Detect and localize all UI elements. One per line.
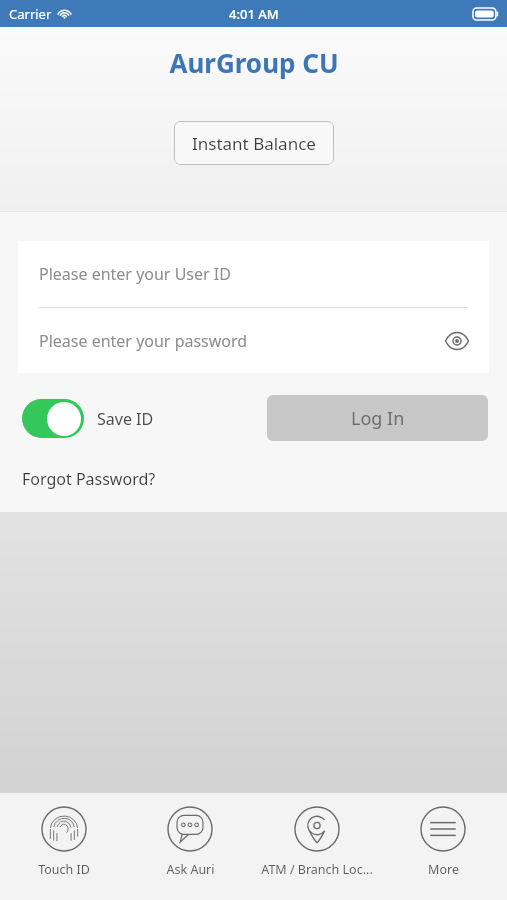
button[interactable]: More [381, 793, 505, 878]
staticText: More [428, 861, 459, 878]
button[interactable]: ATM / Branch Locator [255, 793, 379, 878]
button[interactable]: Please enter your User ID [18, 241, 489, 307]
button[interactable]: Show password [441, 325, 473, 357]
button[interactable]: Please enter your password [18, 308, 489, 373]
button[interactable]: Log In [267, 395, 488, 441]
button[interactable]: Forgot Password? [22, 468, 156, 490]
other: Ask Auri [167, 806, 213, 852]
staticText: Log In [351, 406, 405, 431]
staticText: Ask Auri [166, 861, 215, 878]
staticText: Touch ID [38, 861, 90, 878]
other: More [420, 806, 466, 852]
button[interactable]: Instant Balance [174, 121, 334, 165]
staticText: Forgot Password? [22, 468, 156, 490]
button[interactable]: Ask Auri [128, 793, 252, 878]
other: Touch ID [41, 806, 87, 852]
staticText: Instant Balance [192, 132, 316, 155]
button[interactable]: Save ID [22, 399, 154, 438]
staticText: 4:01 AM [229, 5, 279, 23]
staticText: Carrier [9, 5, 52, 23]
staticText: AurGroup CU [169, 45, 339, 80]
staticText: Please enter your password [39, 330, 248, 352]
staticText: Please enter your User ID [39, 263, 231, 285]
staticText: ATM / Branch Loc... [261, 861, 373, 878]
other: ATM / Branch Locator [294, 806, 340, 852]
staticText: Save ID [97, 408, 154, 430]
button[interactable]: Touch ID [2, 793, 126, 878]
